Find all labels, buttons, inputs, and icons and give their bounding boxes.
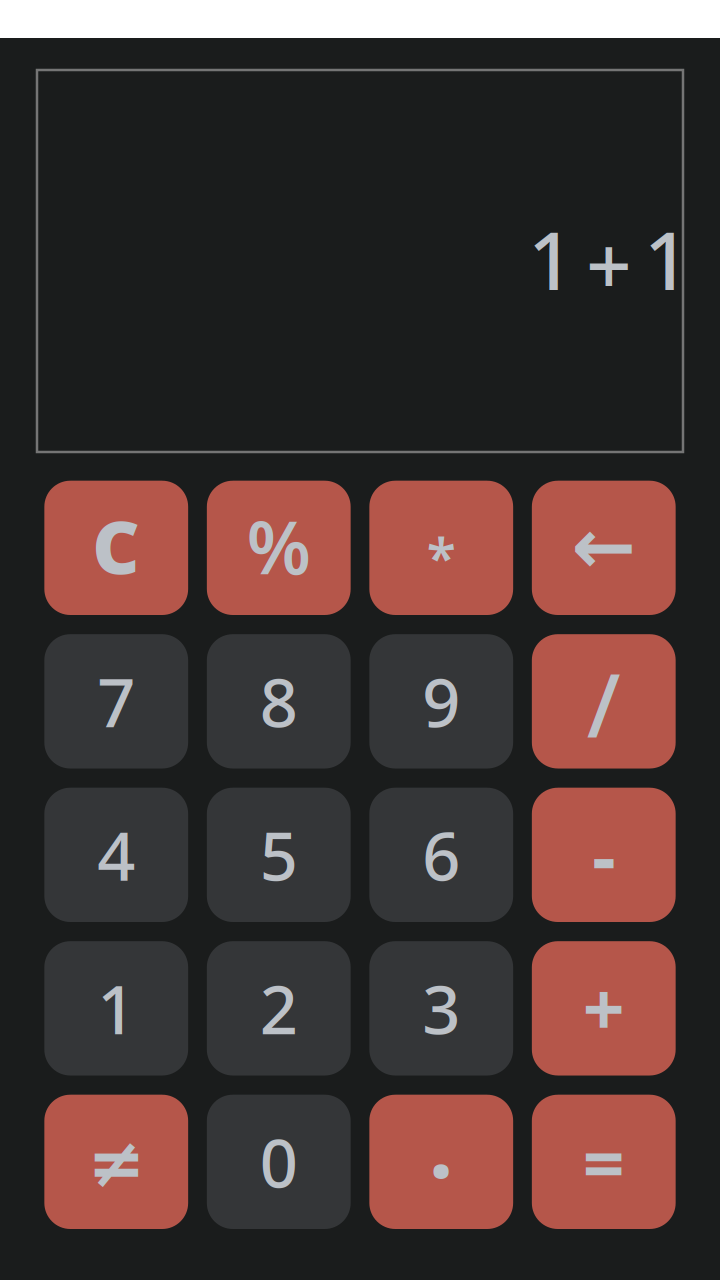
staticText: 1 xyxy=(644,206,690,312)
button[interactable]: 2 xyxy=(207,941,351,1075)
button[interactable]: Clear xyxy=(44,481,188,615)
staticText: 8 xyxy=(260,657,298,746)
staticText: + xyxy=(586,211,632,317)
button[interactable]: 5 xyxy=(207,788,351,922)
button[interactable]: 0 xyxy=(207,1095,351,1229)
staticText: 3 xyxy=(422,964,460,1053)
staticText: % xyxy=(247,497,311,595)
button[interactable]: 8 xyxy=(207,634,351,768)
button[interactable]: Multiply xyxy=(369,481,513,615)
staticText: ← xyxy=(571,503,636,591)
button[interactable]: 3 xyxy=(369,941,513,1075)
staticText: 2 xyxy=(260,964,298,1053)
staticText: 7 xyxy=(97,657,135,746)
button[interactable]: Decimal point xyxy=(369,1095,513,1229)
staticText: 9 xyxy=(422,657,460,746)
button[interactable]: 4 xyxy=(44,788,188,922)
staticText: = xyxy=(583,1113,625,1211)
staticText: - xyxy=(592,806,615,904)
button[interactable]: Backspace xyxy=(532,481,676,615)
staticText: 1 xyxy=(97,964,135,1053)
staticText: 0 xyxy=(260,1118,298,1206)
staticText: 1 xyxy=(528,206,574,312)
button[interactable]: Not equal xyxy=(44,1095,188,1229)
button[interactable]: Percent xyxy=(207,481,351,615)
staticText: 6 xyxy=(422,811,460,899)
button[interactable]: Equals xyxy=(532,1095,676,1229)
staticText: ≠ xyxy=(87,1123,145,1202)
button[interactable]: Plus xyxy=(532,941,676,1075)
staticText: + xyxy=(583,959,625,1056)
staticText: 5 xyxy=(260,811,298,899)
button[interactable]: 1 xyxy=(44,941,188,1075)
staticText: 4 xyxy=(97,811,135,899)
button[interactable]: 9 xyxy=(369,634,513,768)
staticText: · xyxy=(429,1110,454,1227)
staticText: C xyxy=(92,497,140,595)
button[interactable]: Minus xyxy=(532,788,676,922)
button[interactable]: 7 xyxy=(44,634,188,768)
button[interactable]: Divide xyxy=(532,634,676,768)
staticText: * xyxy=(427,521,456,592)
button[interactable]: 6 xyxy=(369,788,513,922)
staticText: / xyxy=(587,645,621,762)
